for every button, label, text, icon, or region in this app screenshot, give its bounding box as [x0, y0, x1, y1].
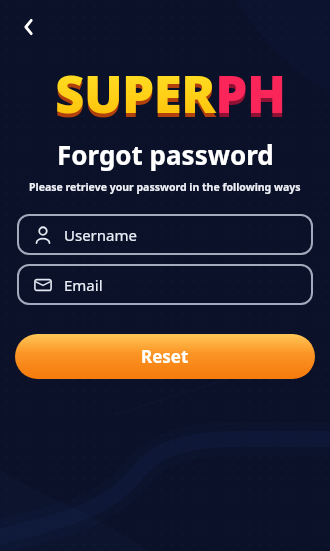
button[interactable]: Username [17, 214, 313, 255]
staticText: Reset [141, 345, 189, 368]
button[interactable] [12, 10, 46, 44]
button[interactable]: Reset [15, 334, 315, 379]
staticText: Username [64, 225, 137, 245]
staticText: Forgot password [57, 137, 274, 172]
staticText: SUPERPH [55, 62, 286, 131]
staticText: Please retrieve your password in the fol… [29, 180, 301, 194]
staticText: SUPERPH [55, 58, 286, 127]
button[interactable]: Email [17, 264, 313, 305]
staticText: Email [64, 275, 103, 295]
